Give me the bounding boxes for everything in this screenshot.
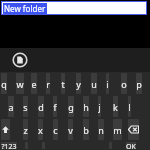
staticText: y bbox=[76, 78, 81, 90]
staticText: o bbox=[121, 78, 127, 90]
button[interactable]: m bbox=[113, 119, 122, 140]
button[interactable]: g bbox=[68, 96, 74, 117]
button[interactable]: e bbox=[31, 73, 37, 94]
staticText: d bbox=[38, 101, 44, 113]
staticText: l bbox=[128, 101, 131, 113]
staticText: p bbox=[136, 78, 142, 90]
button[interactable]: p bbox=[136, 73, 142, 94]
staticText: c bbox=[53, 124, 58, 136]
button[interactable]: a bbox=[8, 96, 14, 117]
staticText: q bbox=[1, 78, 7, 90]
button[interactable]: k bbox=[113, 96, 118, 117]
staticText: b bbox=[83, 124, 89, 136]
button[interactable]: i bbox=[106, 73, 109, 94]
button[interactable]: x bbox=[38, 119, 43, 140]
button[interactable]: w bbox=[16, 73, 24, 94]
staticText: g bbox=[68, 101, 74, 113]
button[interactable]: c bbox=[53, 119, 58, 140]
staticText: k bbox=[113, 101, 118, 113]
staticText: t bbox=[61, 78, 65, 90]
staticText: r bbox=[46, 78, 50, 90]
button[interactable]: New folder bbox=[1, 1, 147, 15]
button[interactable]: b bbox=[83, 119, 89, 140]
staticText: ?123 bbox=[1, 142, 17, 149]
staticText: s bbox=[23, 101, 28, 113]
button[interactable]: Backspace bbox=[128, 119, 139, 140]
button[interactable]: u bbox=[91, 73, 97, 94]
staticText: f bbox=[53, 101, 57, 113]
button[interactable]: r bbox=[46, 73, 50, 94]
button[interactable]: n bbox=[98, 119, 104, 140]
button[interactable]: h bbox=[83, 96, 89, 117]
staticText: e bbox=[31, 78, 37, 90]
button[interactable]: s bbox=[23, 96, 28, 117]
staticText: a bbox=[8, 101, 14, 113]
button[interactable]: t bbox=[61, 73, 65, 94]
staticText: v bbox=[68, 124, 73, 136]
button[interactable]: Clipboard suggestion bbox=[12, 52, 28, 68]
staticText: h bbox=[83, 101, 89, 113]
staticText: j bbox=[98, 101, 101, 113]
staticText: m bbox=[113, 124, 122, 136]
button[interactable]: y bbox=[76, 73, 81, 94]
button[interactable]: v bbox=[68, 119, 73, 140]
staticText: w bbox=[16, 78, 24, 90]
button[interactable]: Shift bbox=[1, 119, 10, 140]
staticText: OK bbox=[126, 142, 136, 149]
button[interactable]: f bbox=[53, 96, 57, 117]
staticText: u bbox=[91, 78, 97, 90]
button[interactable]: l bbox=[128, 96, 131, 117]
staticText: z bbox=[23, 124, 28, 136]
button[interactable]: d bbox=[38, 96, 44, 117]
button[interactable]: j bbox=[98, 96, 101, 117]
staticText: i bbox=[106, 78, 109, 90]
button[interactable]: o bbox=[121, 73, 127, 94]
button[interactable]: q bbox=[1, 73, 7, 94]
staticText: New folder bbox=[4, 3, 46, 14]
button[interactable]: z bbox=[23, 119, 28, 140]
button[interactable]: OK bbox=[126, 142, 136, 149]
staticText: x bbox=[38, 124, 43, 136]
button[interactable]: ?123 bbox=[1, 142, 17, 149]
staticText: n bbox=[98, 124, 104, 136]
